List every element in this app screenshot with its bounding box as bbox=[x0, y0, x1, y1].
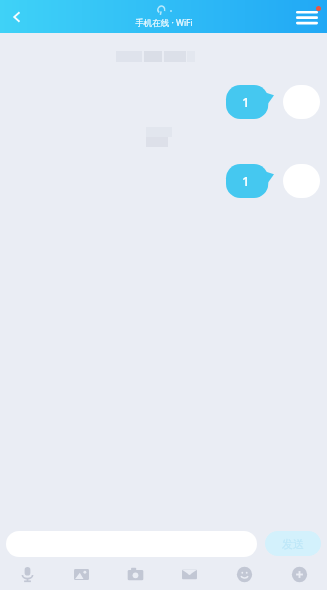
staticText: 1 bbox=[242, 93, 250, 111]
staticText: 手机在线 · WiFi bbox=[135, 17, 193, 29]
button[interactable]: 1 bbox=[226, 85, 320, 119]
staticText: 发送 bbox=[282, 537, 304, 551]
staticText: 1 bbox=[242, 172, 250, 190]
button[interactable]: Menu bbox=[287, 0, 327, 33]
button[interactable]: More bbox=[272, 562, 327, 587]
button[interactable]: Emoji bbox=[217, 562, 272, 587]
button[interactable]: Video bbox=[162, 562, 217, 587]
button[interactable]: Photos bbox=[54, 562, 108, 587]
button[interactable]: 发送 bbox=[265, 531, 321, 556]
button[interactable]: Voice message bbox=[0, 562, 54, 587]
button[interactable]: 1 bbox=[226, 164, 320, 198]
button[interactable]: Camera bbox=[108, 562, 162, 587]
button[interactable]: Back bbox=[0, 0, 34, 33]
